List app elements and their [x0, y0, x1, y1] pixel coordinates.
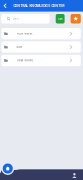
button[interactable]: SOP — [1, 41, 81, 53]
button[interactable]: Profile — [69, 171, 79, 180]
button[interactable]: USER GUIDE — [1, 55, 81, 66]
button[interactable]: Favorites — [71, 14, 81, 23]
button[interactable]: Home — [3, 163, 13, 173]
staticText: USER GUIDE — [16, 59, 32, 62]
button[interactable]: ALUR KERJA — [1, 28, 81, 39]
button[interactable]: Back — [0, 0, 9, 12]
staticText: CENTRAL KNOWLEDGE CENTER — [13, 4, 64, 8]
staticText: Search ... — [13, 17, 23, 20]
staticText: Cari — [58, 17, 63, 20]
staticText: ALUR KERJA — [16, 32, 32, 35]
button[interactable]: Cari — [56, 14, 65, 23]
staticText: SOP — [16, 46, 22, 48]
